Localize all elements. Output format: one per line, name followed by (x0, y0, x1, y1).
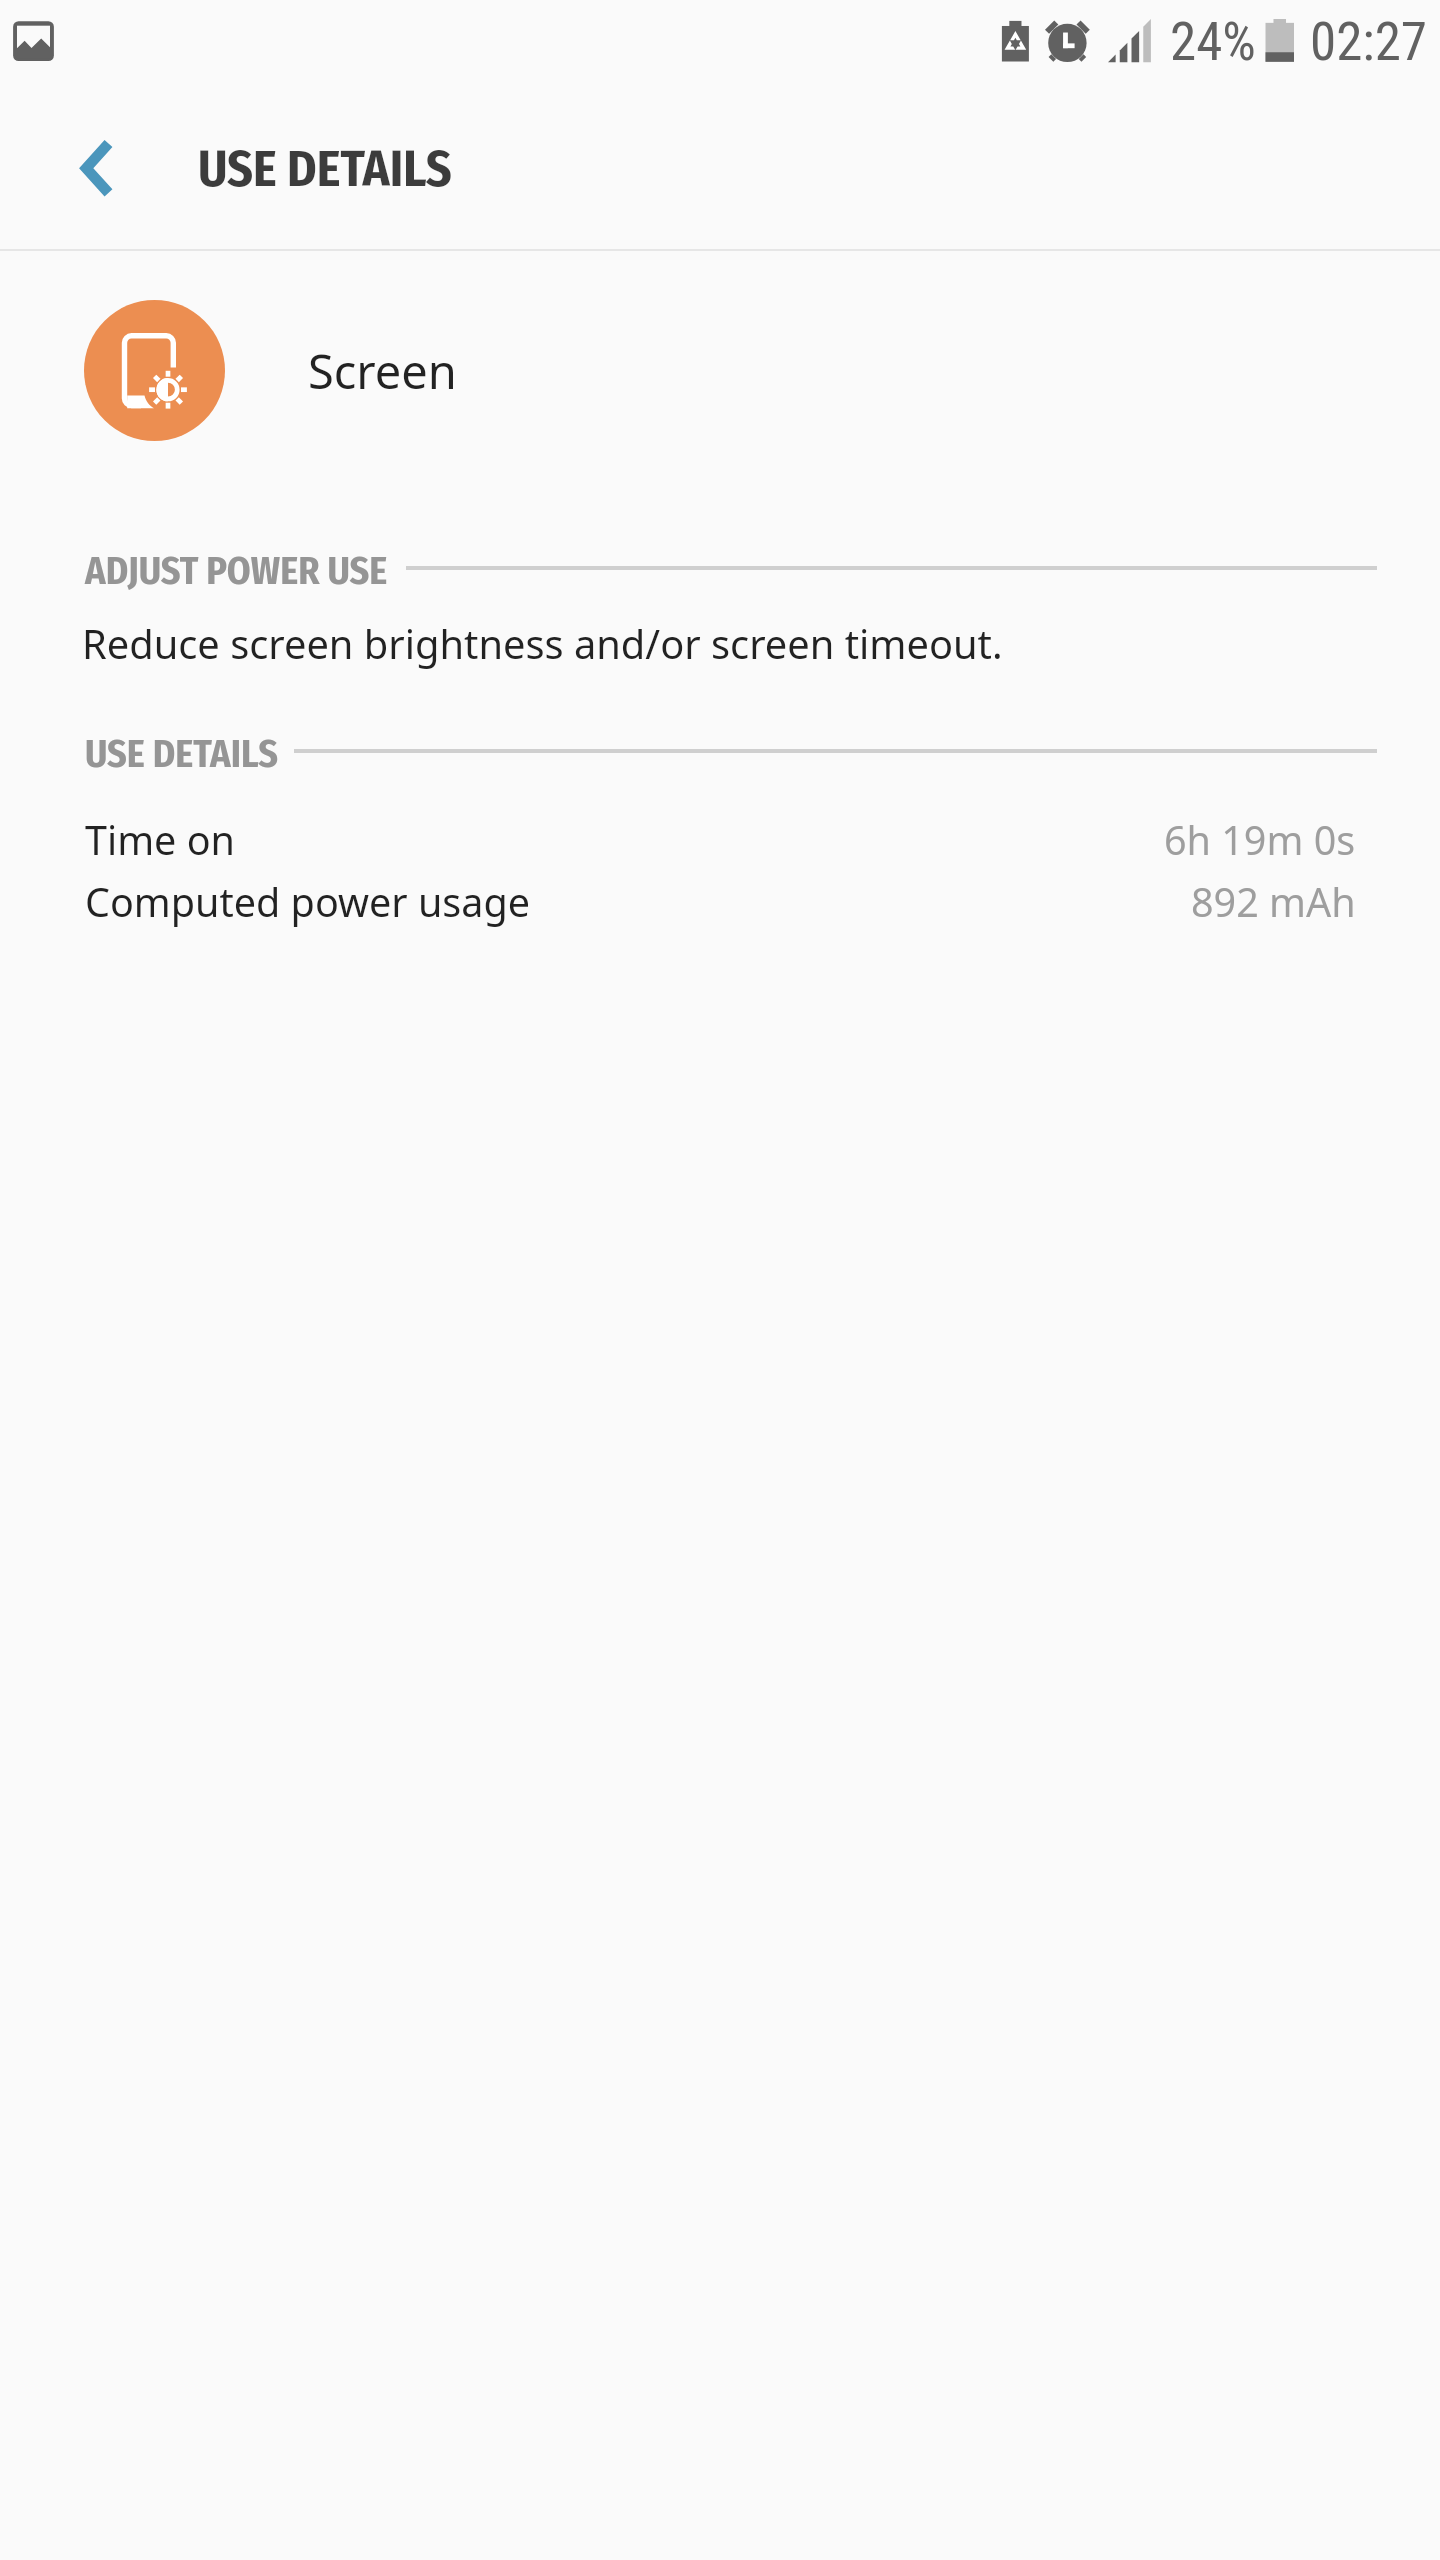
staticText: 02:27 (1310, 11, 1428, 73)
staticText: Screen (308, 339, 457, 403)
button[interactable]: Time on (85, 813, 1356, 867)
staticText: ADJUST POWER USE (85, 548, 388, 594)
staticText: 892 mAh (1191, 875, 1356, 929)
staticText: Reduce screen brightness and/or screen t… (82, 616, 1003, 670)
staticText: Time on (85, 813, 235, 867)
staticText: 6h 19m 0s (1164, 813, 1356, 867)
staticText: USE DETAILS (198, 139, 452, 199)
staticText: 24% (1170, 11, 1256, 73)
staticText: USE DETAILS (85, 731, 278, 777)
button[interactable]: Navigate up (47, 120, 143, 216)
staticText: Computed power usage (85, 875, 530, 929)
button[interactable]: Computed power usage (85, 875, 1356, 929)
